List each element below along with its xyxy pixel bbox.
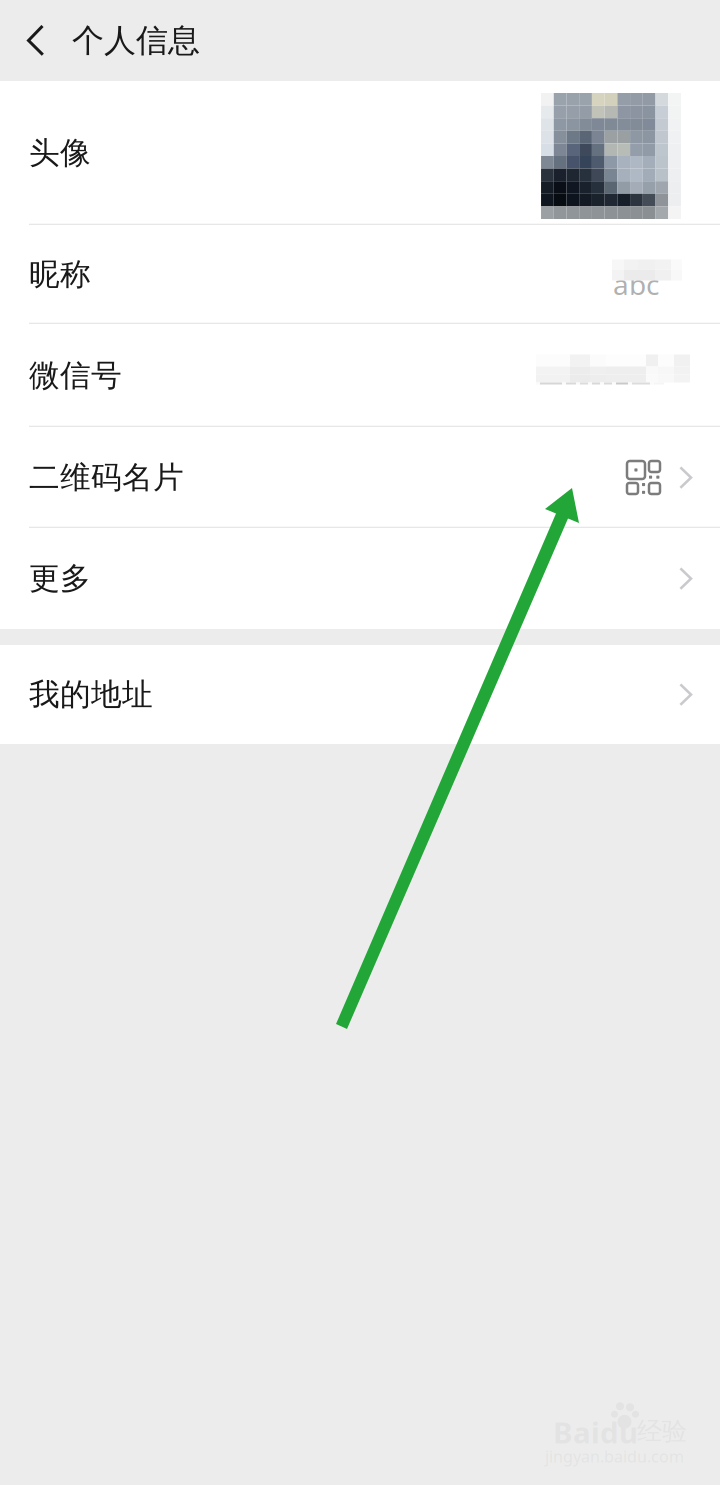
button[interactable]: Back [0,0,72,81]
staticText: 经验 [637,1416,687,1447]
staticText: 二维码名片 [29,459,184,496]
staticText: 微信号 [29,357,122,394]
button[interactable]: 二维码名片 [0,427,720,528]
staticText: 头像 [29,134,91,172]
button[interactable]: 更多 [0,528,720,629]
staticText: abc [613,265,659,303]
staticText: 昵称 [29,256,91,293]
staticText: Baidu [553,1413,638,1452]
staticText: 个人信息 [72,21,200,60]
button[interactable]: 微信号 [0,324,720,427]
button[interactable]: 头像 [0,81,720,225]
button[interactable]: 我的地址 [0,645,720,744]
staticText: 更多 [29,560,91,597]
staticText: 我的地址 [29,676,153,713]
button[interactable]: 昵称 [0,225,720,324]
